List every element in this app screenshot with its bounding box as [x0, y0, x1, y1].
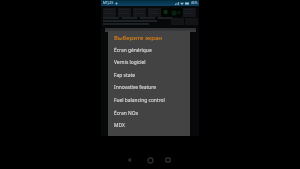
staticText: MTJ-25: [103, 1, 114, 5]
staticText: Fap state: [114, 72, 135, 79]
button[interactable]: MDX: [108, 119, 190, 132]
staticText: Innovative feature: [114, 84, 156, 91]
button[interactable]: Fuel balancing control: [108, 94, 190, 107]
staticText: Fuel balancing control: [114, 97, 165, 104]
staticText: 46%: [191, 1, 198, 5]
button[interactable]: Innovative feature: [108, 81, 190, 94]
button[interactable]: Home: [143, 153, 157, 167]
staticText: Выберите экран: [114, 34, 163, 42]
button[interactable]: Écran NOx: [108, 107, 190, 120]
button[interactable]: Back: [122, 153, 136, 167]
button[interactable]: Vernis logiciel: [108, 56, 190, 69]
staticText: Écran générique: [114, 47, 152, 54]
button[interactable]: Écran générique: [108, 44, 190, 57]
staticText: Vernis logiciel: [114, 59, 146, 66]
staticText: Écran NOx: [114, 110, 139, 117]
button[interactable]: Fap state: [108, 69, 190, 82]
staticText: MDX: [114, 122, 125, 129]
button[interactable]: Recent apps: [161, 153, 175, 167]
